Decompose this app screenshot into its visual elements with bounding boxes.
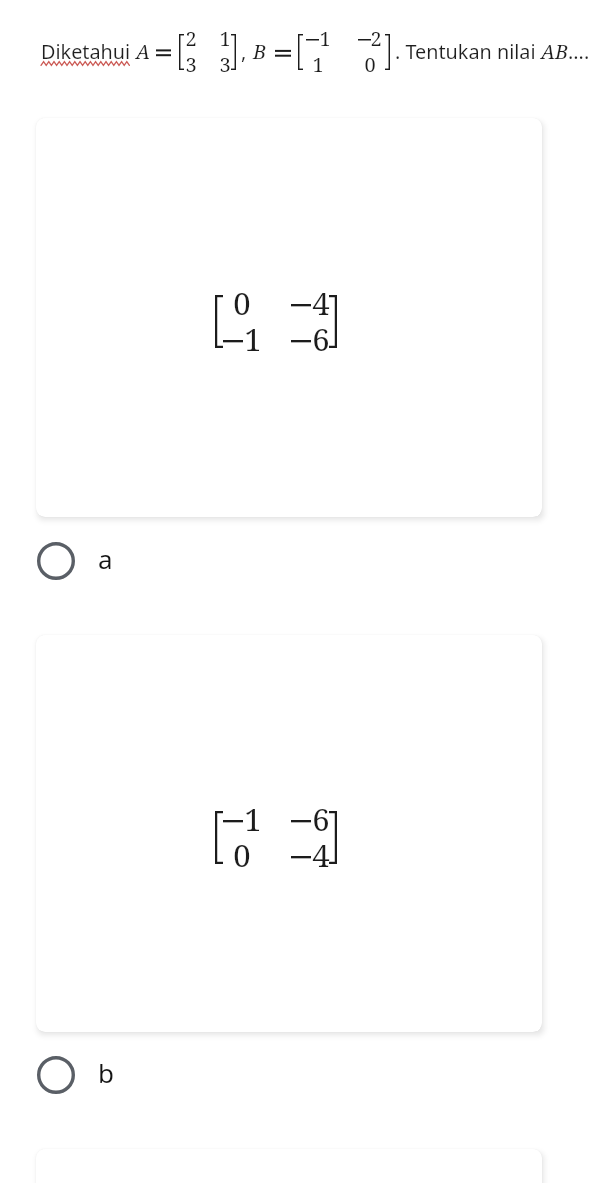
staticText: 0: [233, 282, 251, 324]
staticText: 4: [312, 282, 330, 324]
staticText: 6: [312, 318, 330, 360]
staticText: Diketahui: [41, 38, 131, 65]
staticText: 1: [319, 25, 331, 52]
button[interactable]: b: [0, 1047, 603, 1103]
staticText: 2: [370, 25, 382, 52]
staticText: AB: [541, 38, 568, 65]
staticText: ....: [568, 38, 590, 65]
staticText: 1: [244, 798, 262, 840]
staticText: A: [136, 38, 150, 65]
button[interactable]: a: [0, 533, 603, 589]
button[interactable]: 0: [36, 118, 542, 517]
staticText: 2: [185, 25, 197, 52]
staticText: 1: [219, 25, 231, 52]
staticText: 1: [244, 318, 262, 360]
staticText: . Tentukan nilai: [395, 38, 541, 65]
staticText: 3: [219, 51, 231, 78]
staticText: 6: [312, 798, 330, 840]
button[interactable]: 1: [36, 635, 542, 1032]
staticText: 3: [185, 51, 197, 78]
staticText: 0: [233, 834, 251, 876]
staticText: a: [98, 541, 113, 576]
staticText: 1: [312, 51, 324, 78]
staticText: 4: [312, 834, 330, 876]
staticText: 0: [364, 51, 376, 78]
staticText: ,: [241, 38, 247, 65]
staticText: b: [98, 1055, 114, 1090]
staticText: B: [253, 38, 266, 65]
